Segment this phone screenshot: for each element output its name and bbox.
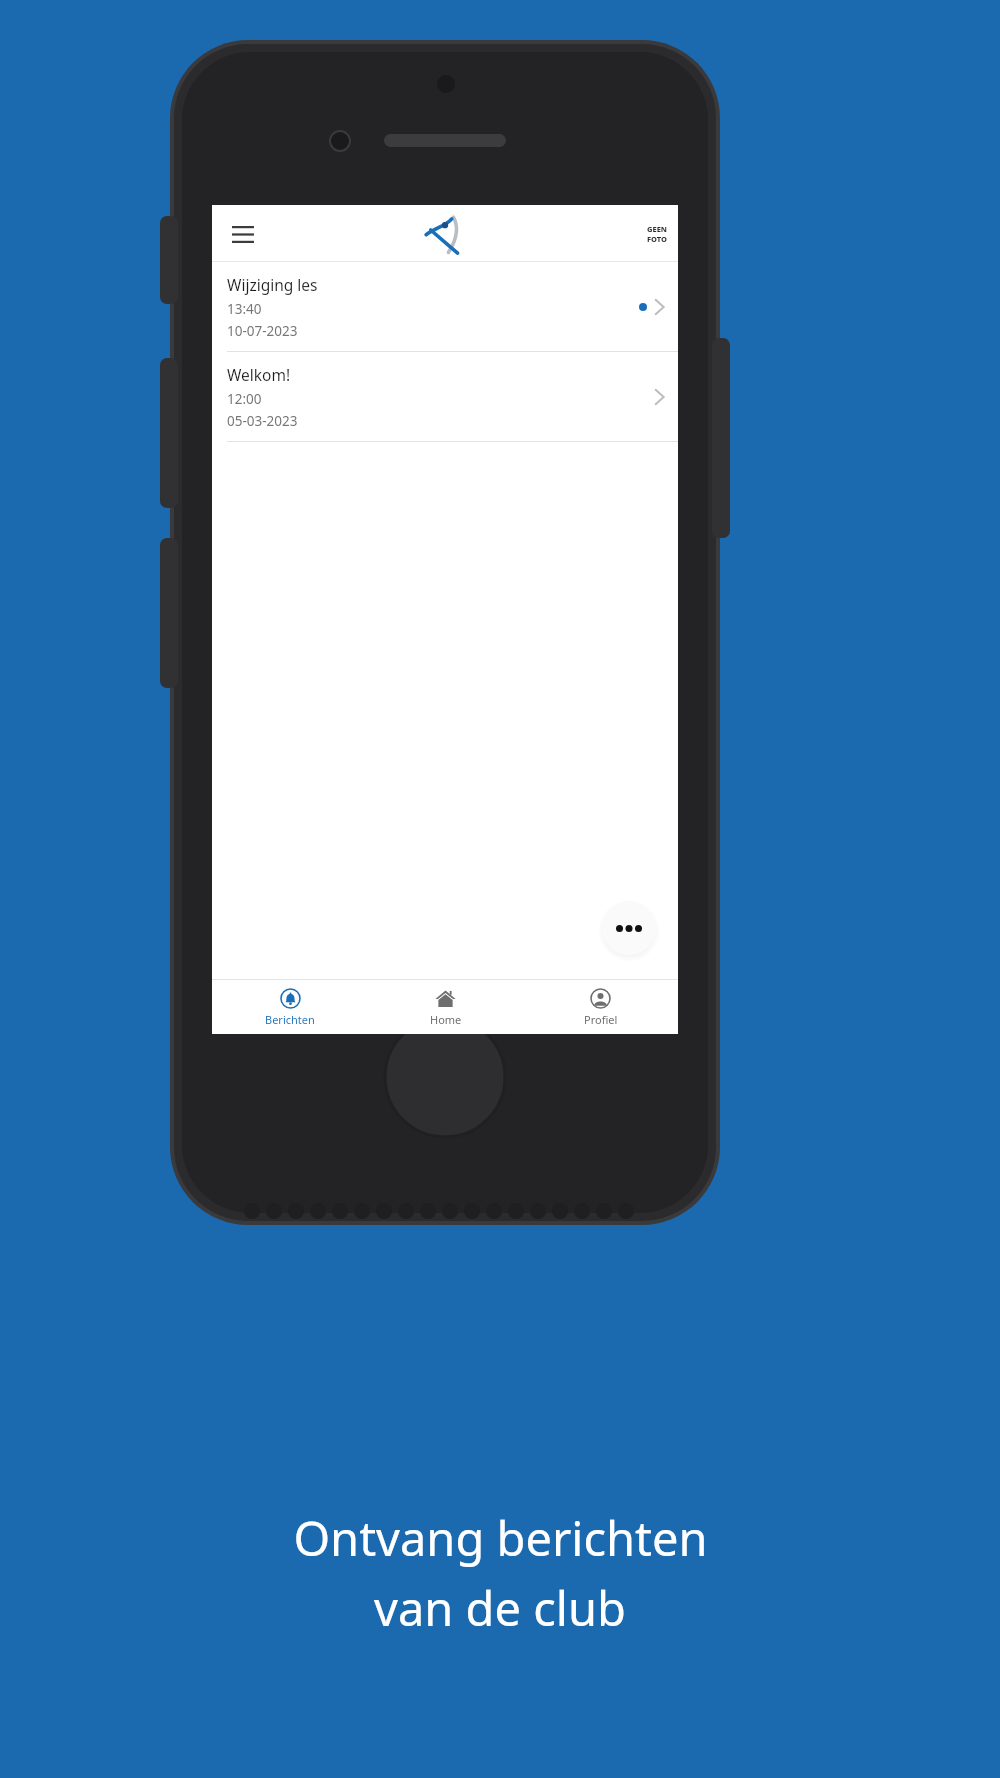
button[interactable]: Profiel — [523, 980, 678, 1034]
staticText: Welkom! — [227, 364, 291, 385]
button[interactable]: Menu — [224, 215, 262, 253]
staticText: Berichten — [265, 1012, 315, 1027]
staticText: Profiel — [584, 1012, 618, 1027]
staticText: 05-03-2023 — [227, 412, 298, 430]
button[interactable]: Berichten — [212, 980, 368, 1034]
staticText: Wijziging les — [227, 274, 318, 295]
staticText: 13:40 — [227, 300, 262, 318]
staticText: Ontvang berichten — [293, 1506, 708, 1570]
staticText: 10-07-2023 — [227, 322, 298, 340]
staticText: van de club — [374, 1576, 626, 1640]
button[interactable]: Wijziging les — [212, 262, 678, 351]
button[interactable]: GEEN — [647, 224, 667, 244]
button[interactable]: More options — [602, 901, 656, 955]
button[interactable]: Home — [368, 980, 523, 1034]
staticText: 12:00 — [227, 390, 262, 408]
staticText: FOTO — [647, 234, 667, 244]
staticText: Home — [430, 1012, 462, 1027]
button[interactable]: Welkom! — [212, 352, 678, 441]
staticText: GEEN — [647, 224, 667, 234]
